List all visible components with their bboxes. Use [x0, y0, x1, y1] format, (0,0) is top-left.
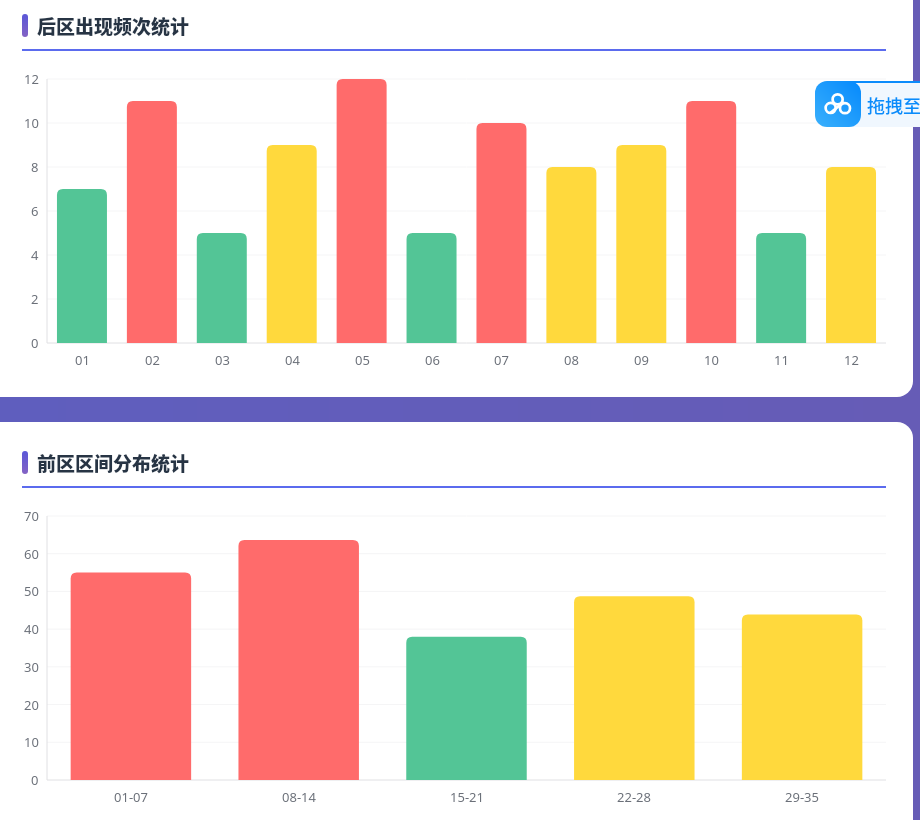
staticText: 06 [425, 351, 440, 369]
staticText: 8 [31, 158, 39, 176]
staticText: 07 [494, 351, 509, 369]
staticText: 02 [145, 351, 160, 369]
staticText: 2 [31, 290, 39, 308]
button[interactable]: 前区区间分布统计 [22, 448, 190, 476]
staticText: 15-21 [450, 788, 484, 806]
staticText: 50 [24, 582, 39, 600]
staticText: 09 [634, 351, 649, 369]
staticText: 60 [24, 545, 39, 563]
staticText: 4 [31, 246, 39, 264]
staticText: 05 [355, 351, 370, 369]
staticText: 10 [24, 733, 39, 751]
staticText: 12 [844, 351, 859, 369]
staticText: 前区区间分布统计 [37, 449, 190, 477]
staticText: 12 [24, 70, 39, 88]
staticText: 30 [24, 658, 39, 676]
staticText: 70 [24, 507, 39, 525]
staticText: 01 [75, 351, 90, 369]
staticText: 后区出现频次统计 [37, 12, 190, 40]
staticText: 0 [31, 771, 39, 789]
staticText: 03 [215, 351, 230, 369]
staticText: 0 [31, 334, 39, 352]
staticText: 01-07 [114, 788, 148, 806]
staticText: 29-35 [785, 788, 819, 806]
staticText: 04 [285, 351, 300, 369]
staticText: 拖拽至此 [867, 92, 920, 118]
button[interactable]: 后区出现频次统计 [22, 11, 190, 39]
staticText: 10 [704, 351, 719, 369]
button[interactable]: 拖拽至此上传到百度网盘 [815, 81, 861, 127]
staticText: 40 [24, 620, 39, 638]
staticText: 22-28 [617, 788, 651, 806]
staticText: 08 [564, 351, 579, 369]
staticText: 20 [24, 696, 39, 714]
staticText: 10 [24, 114, 39, 132]
staticText: 08-14 [282, 788, 316, 806]
staticText: 11 [774, 351, 789, 369]
staticText: 6 [31, 202, 39, 220]
